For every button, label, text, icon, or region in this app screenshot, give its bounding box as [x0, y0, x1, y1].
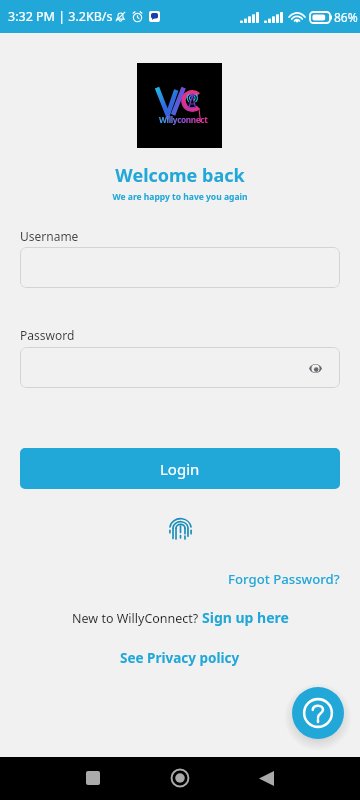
staticText: We are happy to have you again [0, 191, 360, 203]
staticText: New to WillyConnect? [72, 610, 202, 627]
button[interactable]: Recents [73, 758, 113, 798]
button[interactable]: Show password [20, 347, 340, 388]
staticText: Password [20, 327, 75, 343]
button[interactable]: Forgot Password? [228, 570, 360, 588]
staticText: Willyconnect [159, 114, 208, 125]
staticText: Welcome back [0, 163, 360, 188]
button[interactable]: Login [20, 448, 340, 489]
button[interactable]: Sign up here [202, 608, 289, 627]
staticText: 86% [334, 9, 358, 25]
button[interactable]: Fingerprint login [166, 514, 195, 543]
button[interactable]: Home [160, 758, 200, 798]
staticText: 3:32 PM | 3.2KB/s [8, 8, 113, 25]
staticText: Login [160, 459, 200, 479]
button[interactable]: Show password [303, 356, 327, 380]
staticText: Username [20, 228, 79, 244]
button[interactable]: Back [246, 758, 286, 798]
button[interactable] [20, 247, 340, 288]
button[interactable]: See Privacy policy [120, 649, 240, 667]
button[interactable]: Help [292, 687, 344, 739]
